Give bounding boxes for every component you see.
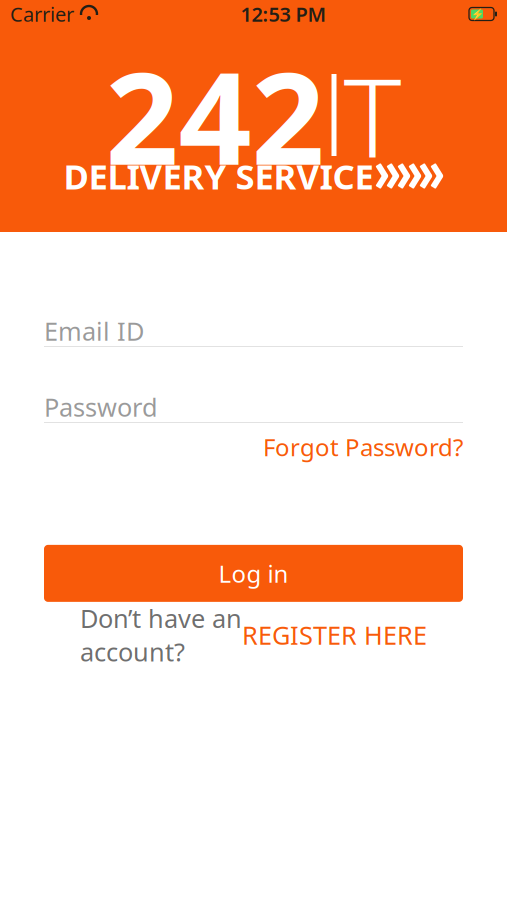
staticText: T: [343, 42, 401, 188]
button[interactable]: Email ID: [44, 316, 463, 347]
staticText: 242: [105, 30, 324, 200]
staticText: DELIVERY SERVICE: [63, 153, 373, 199]
staticText: ⚡: [470, 8, 483, 20]
button[interactable]: Password: [44, 392, 463, 423]
staticText: Carrier: [10, 1, 74, 27]
staticText: 12:53 PM: [240, 1, 326, 27]
staticText: Password: [44, 390, 158, 424]
staticText: Don’t have an account?: [80, 601, 242, 668]
button[interactable]: Log in: [44, 545, 463, 602]
staticText: Email ID: [44, 314, 144, 348]
staticText: Forgot Password?: [263, 431, 463, 463]
button[interactable]: Forgot Password?: [263, 431, 463, 463]
staticText: REGISTER HERE: [242, 618, 427, 652]
staticText: Log in: [218, 557, 288, 589]
button[interactable]: Don’t have an account?: [44, 620, 463, 650]
